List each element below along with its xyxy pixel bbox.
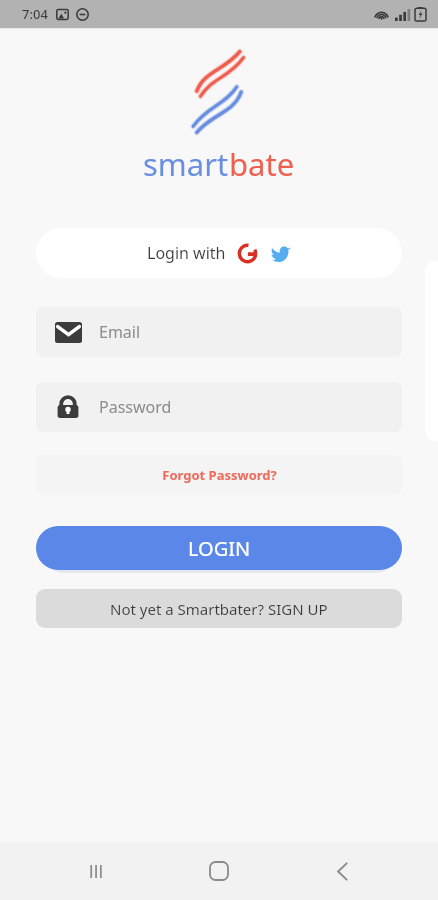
other: Sign in with Twitter bbox=[271, 243, 292, 264]
button[interactable]: Not yet a Smartbater? SIGN UP bbox=[36, 589, 402, 628]
button[interactable]: Home bbox=[193, 845, 245, 897]
staticText: bate bbox=[229, 143, 295, 185]
staticText: Login with bbox=[147, 242, 226, 264]
staticText: Not yet a Smartbater? SIGN UP bbox=[110, 599, 328, 619]
button[interactable]: Email bbox=[36, 307, 402, 357]
staticText: smart bbox=[143, 143, 229, 185]
button[interactable]: Back bbox=[316, 845, 368, 897]
button[interactable]: LOGIN bbox=[36, 526, 402, 570]
staticText: Forgot Password? bbox=[162, 466, 277, 484]
staticText: 7:04 bbox=[22, 5, 48, 23]
other: Sign in with Google bbox=[237, 243, 258, 264]
button[interactable]: Login with bbox=[36, 228, 402, 278]
staticText: Password bbox=[99, 396, 172, 418]
button[interactable]: Recent apps bbox=[71, 845, 123, 897]
staticText: Email bbox=[99, 321, 141, 343]
button[interactable]: Forgot Password? bbox=[36, 455, 402, 495]
staticText: LOGIN bbox=[188, 535, 251, 562]
button[interactable]: Password bbox=[36, 382, 402, 432]
